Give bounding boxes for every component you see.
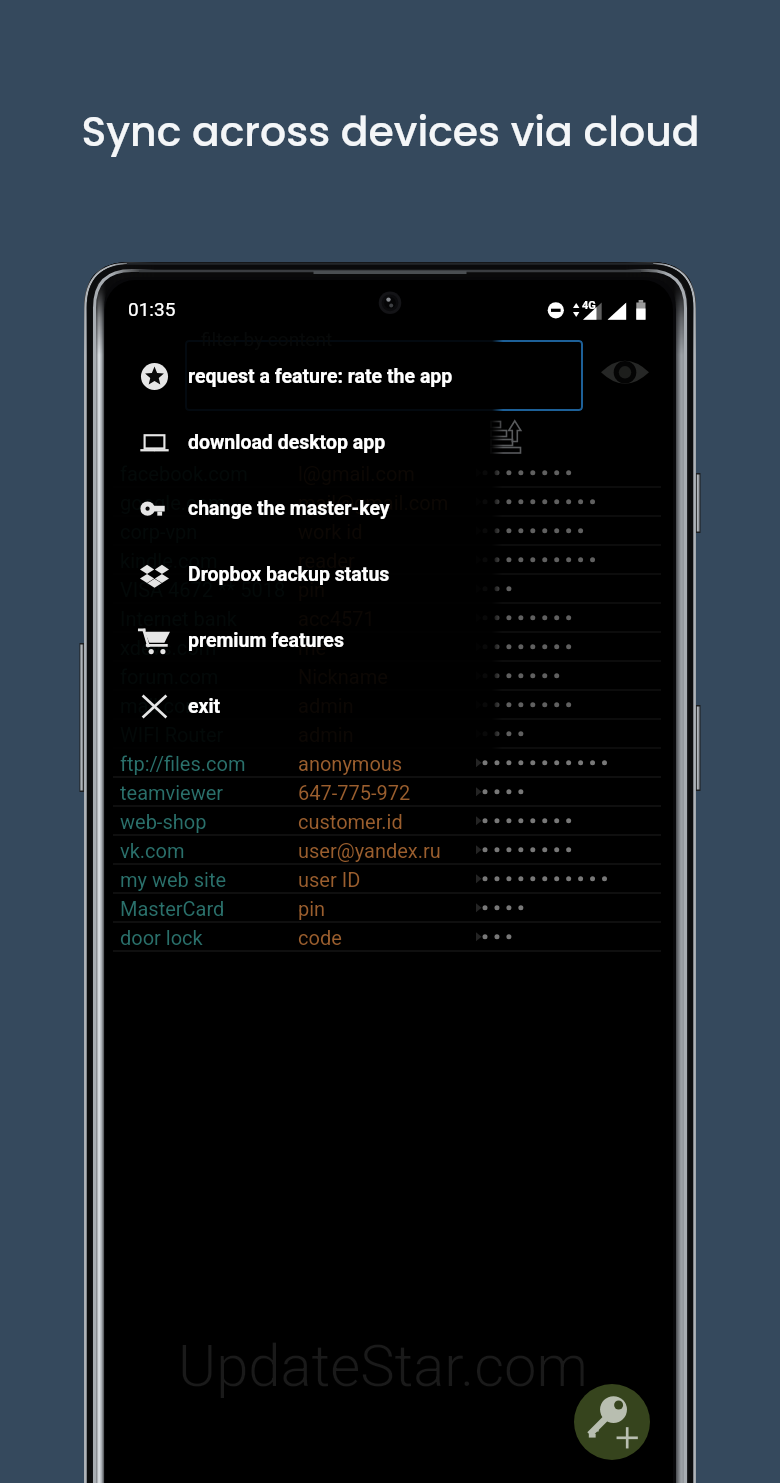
staticText: kindle.com [120,549,218,572]
staticText: ftp://files.com [120,752,246,775]
staticText: exit [188,695,221,718]
staticText: admin [298,694,354,717]
staticText: door lock [120,926,203,949]
button[interactable]: my web site [105,865,673,894]
button[interactable]: google.com [105,488,673,517]
staticText: download desktop app [188,431,386,454]
button[interactable]: VISA 4672 ** 5018 [105,575,673,604]
button[interactable]: Show passwords [601,349,649,395]
staticText: change the master-key [188,497,390,520]
button[interactable]: corp-vpn [105,517,673,546]
staticText: 01:35 [128,298,176,320]
staticText: customer.id [298,810,403,833]
staticText: mail.com [120,694,203,717]
staticText: UpdateStar.com [178,1332,588,1400]
button[interactable]: Sort [491,420,521,454]
staticText: admin [298,723,354,746]
button[interactable]: premium features [105,614,492,666]
button[interactable] [185,340,583,411]
staticText: Nickname [298,665,388,688]
button[interactable]: ftp://files.com [105,749,673,778]
staticText: premium features [188,629,344,652]
staticText: reader [298,549,355,572]
staticText: l@gmail.com [298,462,415,485]
button[interactable]: WIFI Router [105,720,673,749]
staticText: web-shop [120,810,207,833]
button[interactable]: door lock [105,923,673,952]
staticText: request a feature: rate the app [188,365,453,388]
staticText: teamviewer [120,781,224,804]
button[interactable]: mail.com [105,691,673,720]
button[interactable]: facebook.com [105,459,673,488]
staticText: google.com [120,491,226,514]
button[interactable]: vk.com [105,836,673,865]
staticText: vk.com [120,839,185,862]
button[interactable]: xdevs.com [105,633,673,662]
staticText: acc4571 [298,607,375,630]
staticText: mail@gmail.com [298,491,449,514]
staticText: xdevs.com [120,636,217,659]
staticText: user@yandex.ru [298,839,441,862]
staticText: me [298,636,327,659]
staticText: filter by content [201,328,333,350]
button[interactable]: teamviewer [105,778,673,807]
staticText: WIFI Router [120,723,224,746]
staticText: my web site [120,868,227,891]
staticText: anonymous [298,752,403,775]
button[interactable]: MasterCard [105,894,673,923]
staticText: pin [298,578,326,601]
button[interactable]: web-shop [105,807,673,836]
button[interactable]: exit [105,680,492,732]
staticText: code [298,926,342,949]
button[interactable]: Add new password [574,1384,650,1460]
staticText: user ID [298,868,361,891]
button[interactable]: change the master-key [105,482,492,534]
staticText: 647-775-972 [298,781,411,804]
button[interactable]: Internet bank [105,604,673,633]
staticText: pin [298,897,326,920]
staticText: Dropbox backup status [188,563,390,586]
staticText: MasterCard [120,897,225,920]
button[interactable]: forum.com [105,662,673,691]
button[interactable]: request a feature: rate the app [105,350,492,402]
staticText: Internet bank [120,607,237,630]
staticText: Sync across devices via cloud [81,103,700,160]
button[interactable]: Dropbox backup status [105,548,492,600]
staticText: 4G [582,299,596,312]
staticText: work id [298,520,363,543]
staticText: VISA 4672 ** 5018 [120,578,286,601]
button[interactable]: kindle.com [105,546,673,575]
button[interactable]: download desktop app [105,416,492,468]
